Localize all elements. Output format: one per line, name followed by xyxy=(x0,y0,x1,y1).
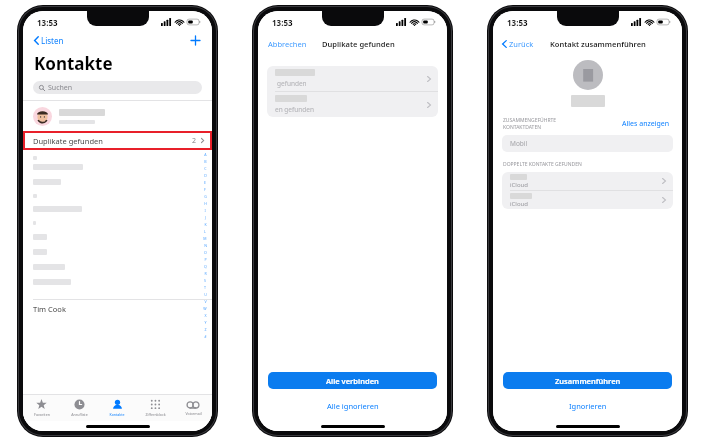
staticText: A xyxy=(204,152,207,157)
staticText: R xyxy=(204,271,207,276)
staticText: Q xyxy=(204,264,207,269)
staticText: N xyxy=(204,243,207,248)
staticText: Z xyxy=(204,327,207,332)
staticText: # xyxy=(204,334,207,339)
staticText: gefunden xyxy=(277,79,307,88)
staticText: 13:53 xyxy=(507,17,528,28)
staticText: 13:53 xyxy=(37,17,58,28)
button[interactable]: Ziffernblock xyxy=(136,395,174,421)
staticText: 13:53 xyxy=(272,17,293,28)
staticText: ZUSAMMENGEFÜHRTE xyxy=(503,117,557,124)
button[interactable]: gefunden xyxy=(267,66,438,91)
staticText: Kontakt zusammenführen xyxy=(550,39,646,49)
button[interactable]: Suchen xyxy=(33,81,202,94)
staticText: Listen xyxy=(41,35,64,46)
staticText: S xyxy=(204,278,206,283)
staticText: C xyxy=(204,166,207,171)
staticText: Tim Cook xyxy=(33,304,66,314)
staticText: Favoriten xyxy=(34,412,50,417)
staticText: Duplikate gefunden xyxy=(322,39,395,49)
staticText: DOPPELTE KONTAKTE GEFUNDEN xyxy=(503,161,582,168)
staticText: Ziffernblock xyxy=(145,412,166,417)
staticText: E xyxy=(204,180,206,185)
staticText: Y xyxy=(204,320,207,325)
button[interactable]: Alle ignorieren xyxy=(323,397,383,415)
button[interactable]: Zusammenführen xyxy=(503,372,672,389)
staticText: H xyxy=(204,201,207,206)
staticText: Alle verbinden xyxy=(326,376,379,386)
button[interactable]: iCloud xyxy=(502,172,673,190)
button[interactable]: iCloud xyxy=(502,191,673,209)
button[interactable] xyxy=(23,101,212,131)
staticText: Suchen xyxy=(48,83,73,93)
staticText: M xyxy=(203,236,207,241)
button[interactable]: en gefunden xyxy=(267,92,438,117)
button[interactable]: Zurück xyxy=(493,38,538,50)
staticText: Kontakte xyxy=(109,412,125,417)
staticText: G xyxy=(204,194,207,199)
staticText: I xyxy=(204,208,206,213)
staticText: X xyxy=(204,313,207,318)
staticText: P xyxy=(204,257,207,262)
staticText: B xyxy=(204,159,207,164)
button[interactable]: Ignorieren xyxy=(565,397,611,415)
staticText: Mobil xyxy=(510,139,528,148)
staticText: D xyxy=(204,173,207,178)
button[interactable]: Kontakt hinzufügen xyxy=(187,32,203,48)
button[interactable]: Mobil xyxy=(502,135,673,152)
staticText: T xyxy=(204,285,206,290)
staticText: KONTAKTDATEN xyxy=(503,124,541,131)
staticText: F xyxy=(204,187,206,192)
button[interactable]: Favoriten xyxy=(23,395,60,421)
button[interactable]: Alle verbinden xyxy=(268,372,437,389)
staticText: iCloud xyxy=(510,181,528,189)
staticText: Kontakte xyxy=(34,52,113,75)
button[interactable]: Kontakte xyxy=(98,395,136,421)
button[interactable]: Abbrechen xyxy=(258,38,311,50)
staticText: Anrufliste xyxy=(71,412,88,417)
staticText: J xyxy=(205,215,206,220)
staticText: V xyxy=(204,299,207,304)
staticText: U xyxy=(204,292,207,297)
staticText: O xyxy=(204,250,207,255)
staticText: en gefunden xyxy=(275,105,314,114)
button[interactable]: Duplikate gefunden xyxy=(23,131,212,150)
staticText: Voicemail xyxy=(185,411,202,416)
button[interactable]: Anrufliste xyxy=(60,395,98,421)
staticText: Zusammenführen xyxy=(555,376,621,386)
button[interactable]: Voicemail xyxy=(174,395,212,421)
staticText: L xyxy=(204,229,206,234)
staticText: Zurück xyxy=(509,39,534,49)
staticText: W xyxy=(203,306,207,311)
staticText: iCloud xyxy=(510,200,528,208)
button[interactable]: Alles anzeigen xyxy=(620,117,672,131)
button[interactable]: Listen xyxy=(32,33,66,48)
staticText: K xyxy=(204,222,207,227)
staticText: Duplikate gefunden xyxy=(33,136,103,146)
staticText: 2 xyxy=(192,136,197,146)
